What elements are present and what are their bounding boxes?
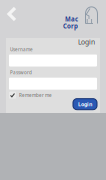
staticText: Login	[78, 100, 92, 108]
staticText: Username	[10, 46, 33, 52]
button[interactable]: Remember me	[6, 90, 100, 99]
staticText: Mac	[65, 15, 78, 23]
staticText: Login	[78, 37, 95, 46]
button[interactable]: Back	[1, 3, 23, 25]
staticText: Remember me	[19, 92, 52, 98]
staticText: Corp	[63, 22, 78, 30]
staticText: Password	[10, 69, 32, 76]
button[interactable]: Login	[73, 99, 97, 110]
